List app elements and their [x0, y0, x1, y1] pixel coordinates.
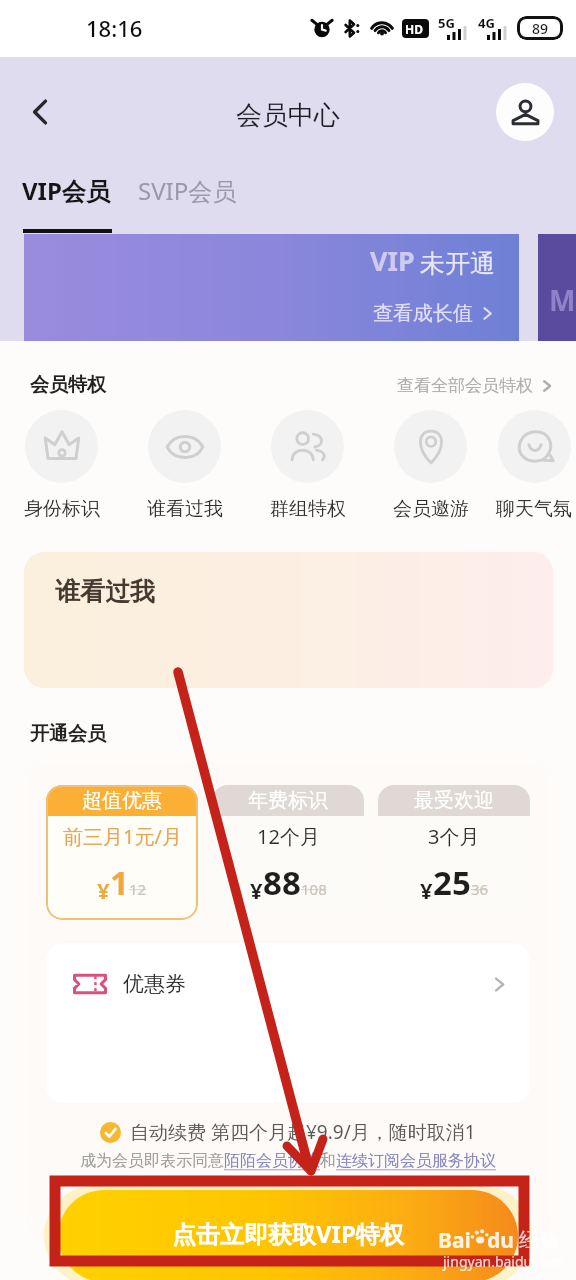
- staticText: 自动续费 第四个月起¥9.9/月，随时取消1: [130, 1119, 476, 1145]
- staticText: 开通会员: [30, 722, 106, 746]
- staticText: 1: [110, 860, 129, 905]
- staticText: ¥: [250, 875, 263, 905]
- button[interactable]: M: [538, 234, 576, 341]
- staticText: 经验: [519, 1228, 559, 1253]
- button[interactable]: 聊天气氛: [492, 410, 576, 521]
- staticText: 优惠券: [123, 971, 186, 997]
- staticText: 超值优惠: [82, 788, 162, 813]
- staticText: 连续订阅会员服务协议: [336, 1151, 496, 1171]
- staticText: du: [487, 1226, 514, 1255]
- staticText: 25: [433, 860, 471, 905]
- staticText: 年费标识: [248, 788, 328, 813]
- staticText: 身份标识: [24, 497, 100, 521]
- staticText: VIP会员: [22, 174, 110, 207]
- button[interactable]: Back: [16, 87, 66, 137]
- button[interactable]: VIP会员: [22, 174, 110, 207]
- button[interactable]: VIP: [24, 234, 519, 341]
- staticText: 成为会员即表示同意: [80, 1151, 224, 1171]
- staticText: jingyan.baidu.com: [443, 1252, 565, 1271]
- staticText: 5G: [438, 14, 455, 32]
- staticText: 会员邀游: [393, 497, 469, 521]
- button[interactable]: 点击立即获取VIP特权: [58, 1190, 518, 1280]
- staticText: 查看成长值: [373, 301, 473, 326]
- staticText: 最受欢迎: [414, 788, 494, 813]
- button[interactable]: SVIP会员: [138, 174, 237, 207]
- staticText: 未开通: [420, 248, 495, 279]
- staticText: 108: [301, 879, 327, 899]
- button[interactable]: 谁看过我: [24, 552, 553, 688]
- button[interactable]: 查看全部会员特权: [397, 375, 554, 396]
- button[interactable]: 年费标识: [212, 785, 364, 920]
- staticText: ¥: [420, 875, 433, 905]
- staticText: 群组特权: [270, 497, 346, 521]
- staticText: 谁看过我: [147, 497, 223, 521]
- button[interactable]: 群组特权: [246, 410, 369, 521]
- button[interactable]: 最受欢迎: [378, 785, 530, 920]
- staticText: 12个月: [257, 823, 320, 850]
- staticText: 36: [471, 879, 489, 899]
- staticText: 会员特权: [30, 373, 106, 397]
- staticText: 4G: [478, 14, 495, 32]
- staticText: 18:16: [86, 13, 143, 43]
- staticText: ¥: [97, 875, 110, 905]
- staticText: 聊天气氛: [496, 497, 572, 521]
- staticText: 谁看过我: [55, 576, 155, 607]
- staticText: HD: [405, 21, 423, 37]
- staticText: 陌陌会员协议: [224, 1151, 320, 1171]
- button[interactable]: 身份标识: [0, 410, 123, 521]
- button[interactable]: 会员邀游: [369, 410, 492, 521]
- staticText: 88: [263, 860, 301, 905]
- button[interactable]: Profile: [496, 83, 554, 141]
- staticText: 前三月1元/月: [63, 823, 182, 850]
- staticText: M: [549, 281, 576, 319]
- staticText: 12: [129, 879, 147, 899]
- staticText: SVIP会员: [138, 174, 237, 207]
- staticText: Bai: [438, 1226, 471, 1255]
- staticText: 查看全部会员特权: [397, 375, 533, 396]
- button[interactable]: 谁看过我: [123, 410, 246, 521]
- button[interactable]: 优惠券: [46, 943, 530, 1103]
- staticText: 3个月: [428, 823, 480, 850]
- staticText: VIP: [370, 242, 415, 279]
- button[interactable]: 超值优惠: [46, 785, 198, 920]
- staticText: 和: [320, 1151, 336, 1171]
- staticText: 89: [532, 19, 549, 38]
- staticText: 点击立即获取VIP特权: [172, 1217, 404, 1250]
- staticText: 会员中心: [236, 99, 340, 132]
